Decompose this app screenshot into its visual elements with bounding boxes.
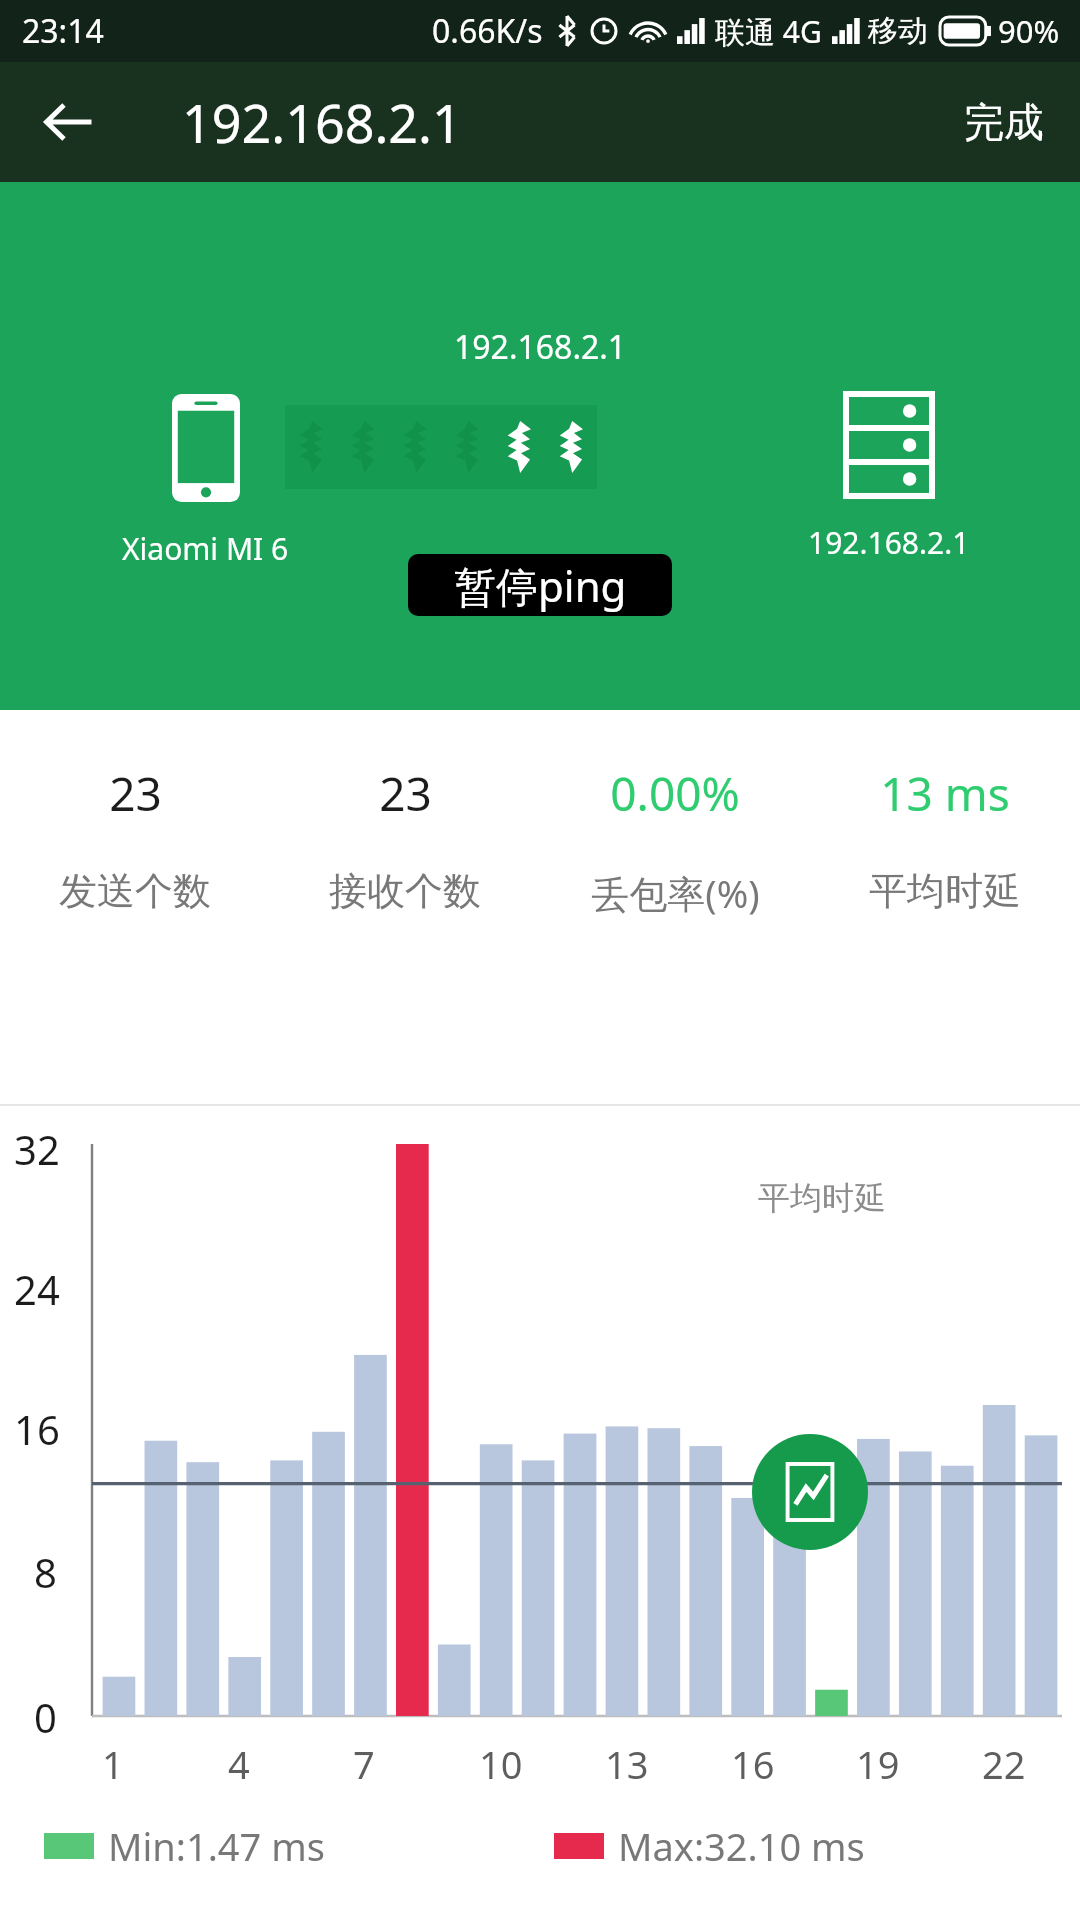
button[interactable]: Back [24,77,114,167]
button[interactable]: 0.00% [540,710,810,1104]
staticText: Min:1.47 ms [108,1820,325,1872]
staticText: 24 [14,1262,60,1316]
staticText: 暂停ping [454,557,627,614]
staticText: 7 [353,1738,375,1790]
staticText: 90% [998,10,1060,52]
staticText: Xiaomi MI 6 [122,528,289,569]
staticText: 丢包率(%) [591,867,760,919]
staticText: 13 ms [880,762,1010,825]
staticText: 16 [14,1402,60,1456]
staticText: 发送个数 [59,867,211,915]
staticText: 0.00% [610,762,740,825]
staticText: Max:32.10 ms [618,1820,865,1872]
button[interactable]: 完成 [944,81,1064,163]
staticText: 192.168.2.1 [454,325,627,369]
staticText: 192.168.2.1 [182,87,462,158]
staticText: 移动 [868,12,928,50]
staticText: 19 [856,1738,900,1790]
button[interactable]: 13 ms [810,710,1080,1104]
staticText: 8 [34,1545,57,1599]
staticText: 13 [605,1738,649,1790]
staticText: 16 [731,1738,775,1790]
staticText: 23 [109,762,162,825]
staticText: 接收个数 [329,867,481,915]
staticText: 192.168.2.1 [808,522,970,563]
button[interactable]: 23 [0,710,270,1104]
staticText: 平均时延 [758,1178,886,1218]
staticText: 0 [34,1690,57,1744]
staticText: 22 [982,1738,1026,1790]
staticText: 完成 [964,97,1044,147]
staticText: 32 [14,1122,60,1176]
staticText: 10 [479,1738,523,1790]
staticText: 联通 4G [715,11,822,52]
button[interactable]: 暂停ping [408,554,672,616]
staticText: 23:14 [22,9,104,53]
staticText: 1 [102,1738,124,1790]
staticText: 23 [379,762,432,825]
button[interactable]: 23 [270,710,540,1104]
staticText: 平均时延 [869,867,1021,915]
staticText: 4 [228,1738,250,1790]
button[interactable]: Show chart [752,1434,868,1550]
staticText: 0.66K/s [432,9,543,53]
